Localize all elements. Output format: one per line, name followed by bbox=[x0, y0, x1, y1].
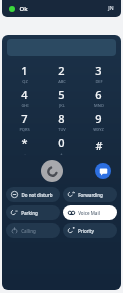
button[interactable]: Voice Mail bbox=[63, 205, 117, 220]
staticText: MNO bbox=[94, 103, 104, 108]
button[interactable]: 6 bbox=[80, 86, 117, 108]
button[interactable]: Ok bbox=[2, 0, 121, 17]
staticText: Parking bbox=[21, 210, 38, 216]
button[interactable]: 7 bbox=[6, 110, 43, 132]
button[interactable]: Do not disturb bbox=[6, 187, 60, 202]
staticText: 0 bbox=[58, 135, 65, 150]
staticText: 5 bbox=[58, 87, 65, 102]
staticText: 1 bbox=[21, 63, 28, 78]
staticText: Voice Mail bbox=[78, 210, 100, 216]
staticText: Do not disturb bbox=[21, 192, 53, 198]
staticText: QZ bbox=[22, 79, 28, 84]
button[interactable]: Parking bbox=[6, 205, 60, 220]
staticText: * bbox=[21, 135, 28, 150]
staticText: TUV bbox=[58, 127, 66, 132]
staticText: GHI bbox=[21, 103, 29, 108]
button[interactable]: * bbox=[6, 134, 43, 156]
button[interactable]: Calling bbox=[6, 223, 60, 238]
button[interactable]: 5 bbox=[43, 86, 80, 108]
button[interactable]: Send SMS bbox=[95, 163, 111, 179]
button[interactable]: 1 bbox=[6, 62, 43, 84]
button[interactable]: 4 bbox=[6, 86, 43, 108]
staticText: 7 bbox=[21, 111, 28, 126]
button[interactable]: Forwarding bbox=[63, 187, 117, 202]
staticText: + bbox=[60, 151, 63, 156]
staticText: PQRS bbox=[19, 127, 30, 132]
button[interactable]: 0 bbox=[43, 134, 80, 156]
staticText: 3 bbox=[95, 63, 102, 78]
button[interactable]: 9 bbox=[80, 110, 117, 132]
staticText: WXYZ bbox=[93, 127, 104, 132]
button[interactable]: 3 bbox=[80, 62, 117, 84]
staticText: JKL bbox=[59, 103, 65, 108]
staticText: 4 bbox=[21, 87, 28, 102]
button[interactable]: 8 bbox=[43, 110, 80, 132]
button[interactable]: Priority bbox=[63, 223, 117, 238]
staticText: ABC bbox=[58, 79, 66, 84]
staticText: JN bbox=[108, 5, 114, 12]
staticText: Calling bbox=[21, 228, 36, 234]
staticText: DEF bbox=[95, 79, 103, 84]
staticText: # bbox=[95, 138, 103, 153]
staticText: 9 bbox=[95, 111, 102, 126]
staticText: . bbox=[24, 151, 26, 156]
staticText: Forwarding bbox=[78, 192, 103, 198]
button[interactable]: 2 bbox=[43, 62, 80, 84]
staticText: Ok bbox=[19, 5, 28, 13]
staticText: Priority bbox=[78, 228, 94, 234]
staticText: 6 bbox=[95, 87, 102, 102]
button[interactable]: Call bbox=[41, 160, 63, 182]
staticText: 8 bbox=[58, 111, 65, 126]
button[interactable]: # bbox=[80, 134, 117, 156]
staticText: 2 bbox=[58, 63, 65, 78]
